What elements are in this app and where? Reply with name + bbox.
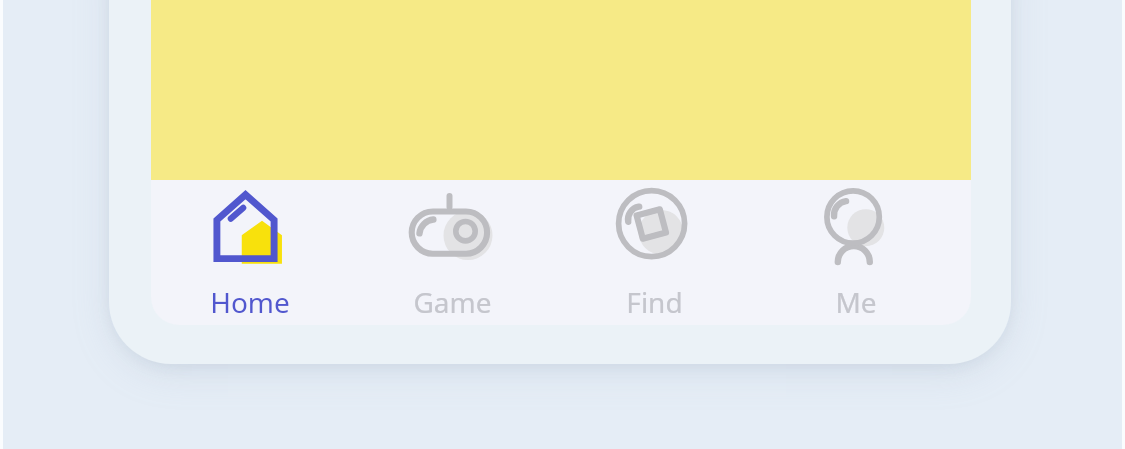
button[interactable]: Game: [377, 186, 527, 321]
staticText: Me: [835, 283, 877, 321]
staticText: Home: [210, 283, 290, 321]
staticText: Game: [413, 283, 492, 321]
button[interactable]: Me: [781, 186, 931, 321]
button[interactable]: Find: [579, 186, 729, 321]
button[interactable]: Home: [175, 186, 325, 321]
staticText: Find: [626, 283, 683, 321]
